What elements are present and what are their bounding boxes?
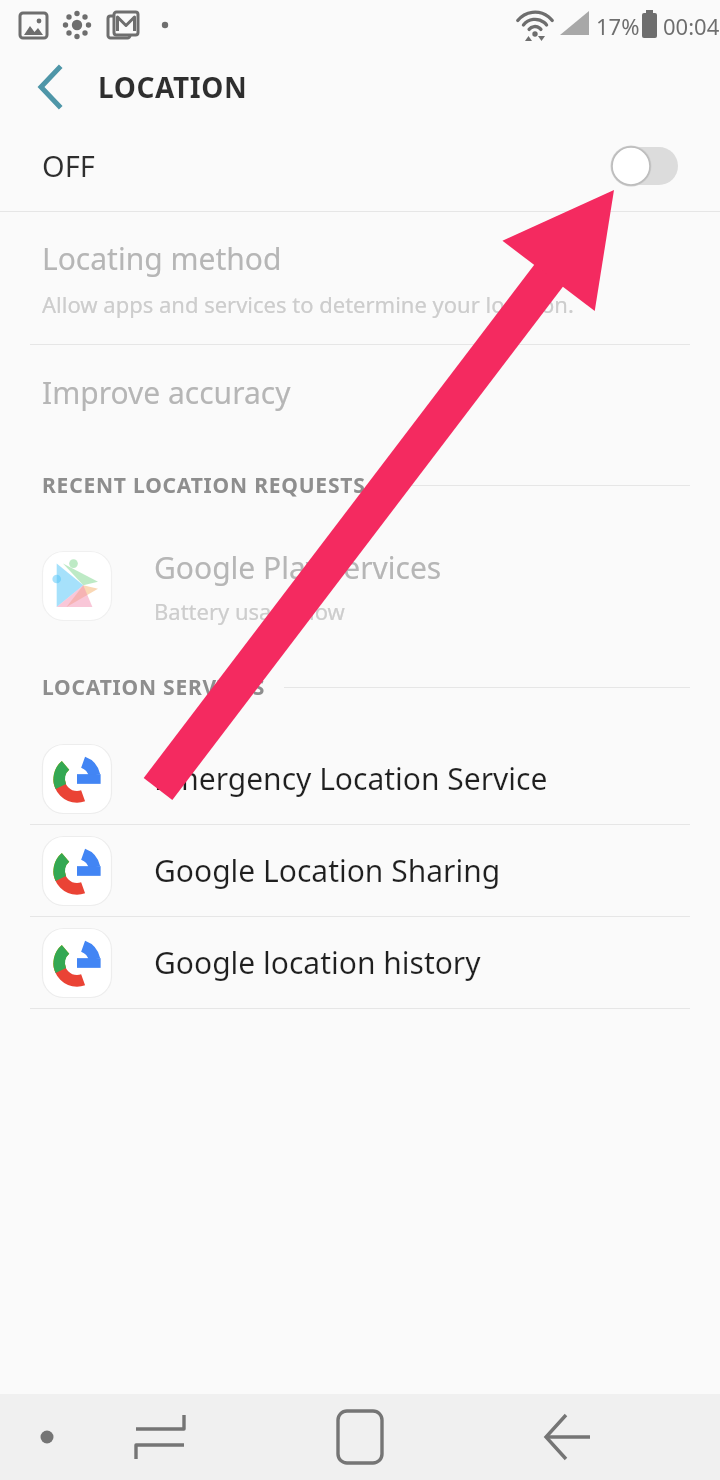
button[interactable]: Locating method [0,212,720,344]
staticText: Google Play services [154,547,442,588]
staticText: OFF [42,146,95,185]
button[interactable]: Back [22,59,78,115]
button[interactable]: Home [324,1401,396,1473]
other: Location off [606,144,678,188]
staticText: Google Location Sharing [154,850,501,891]
staticText: Emergency Location Service [154,758,548,799]
button[interactable]: Emergency Location Service [0,733,720,824]
staticText: 00:04 [663,11,720,41]
button[interactable]: Google Play services [0,531,720,641]
staticText: Locating method [42,238,282,279]
staticText: LOCATION SERVICES [42,673,266,702]
button[interactable]: Recents [126,1403,194,1471]
staticText: Improve accuracy [42,372,291,413]
staticText: Battery usage: low [154,596,345,626]
staticText: 17% [596,11,640,41]
staticText: LOCATION [98,68,248,106]
staticText: RECENT LOCATION REQUESTS [42,471,366,500]
button[interactable]: Improve accuracy [0,345,720,439]
staticText: Allow apps and services to determine you… [42,289,574,319]
button[interactable]: Back [534,1403,602,1471]
button[interactable]: Google location history [0,917,720,1008]
button[interactable]: Google Location Sharing [0,825,720,916]
button[interactable]: OFF [0,120,720,211]
staticText: Google location history [154,942,481,983]
